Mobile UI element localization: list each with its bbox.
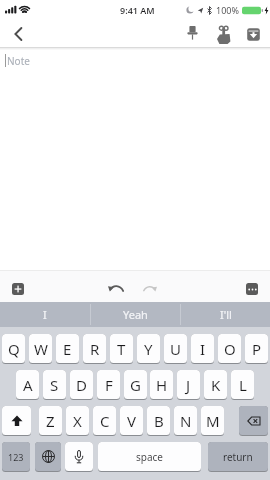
button[interactable]: T [110, 334, 133, 364]
staticText: H [156, 375, 168, 395]
button[interactable] [212, 22, 234, 46]
button[interactable] [65, 442, 93, 472]
button[interactable]: 123 [2, 442, 30, 472]
staticText: V [127, 411, 137, 431]
staticText: N [180, 411, 192, 431]
staticText: P [252, 339, 262, 359]
staticText: F [105, 375, 113, 395]
button[interactable]: K [204, 370, 227, 400]
button[interactable]: L [231, 370, 254, 400]
staticText: S [50, 375, 59, 395]
button[interactable] [246, 283, 258, 295]
staticText: R [90, 339, 100, 359]
staticText: 9:41 AM [120, 4, 155, 16]
staticText: U [170, 339, 181, 359]
button[interactable]: M [201, 406, 224, 436]
staticText: D [76, 375, 87, 395]
button[interactable] [239, 406, 268, 436]
button[interactable]: Q [2, 334, 25, 364]
staticText: return [223, 450, 253, 464]
button[interactable] [242, 22, 264, 46]
staticText: Note [7, 54, 30, 68]
button[interactable] [106, 281, 126, 297]
button[interactable]: I [191, 334, 214, 364]
button[interactable]: P [245, 334, 268, 364]
staticText: M [206, 411, 220, 431]
button[interactable]: V [120, 406, 143, 436]
button[interactable]: U [164, 334, 187, 364]
button[interactable]: R [83, 334, 106, 364]
button[interactable]: J [177, 370, 200, 400]
button[interactable]: I [0, 302, 90, 327]
staticText: C [100, 411, 110, 431]
button[interactable]: N [174, 406, 197, 436]
button[interactable]: H [150, 370, 173, 400]
staticText: A [23, 375, 33, 395]
button[interactable]: F [97, 370, 120, 400]
staticText: K [211, 375, 221, 395]
button[interactable] [139, 281, 159, 297]
button[interactable]: Yeah [91, 302, 180, 327]
button[interactable] [12, 283, 24, 295]
staticText: Z [46, 411, 55, 431]
button[interactable]: A [16, 370, 39, 400]
button[interactable]: Y [137, 334, 160, 364]
staticText: G [130, 375, 141, 395]
staticText: Y [144, 339, 153, 359]
staticText: J [186, 375, 191, 395]
staticText: Q [8, 339, 20, 359]
staticText: 100% [216, 4, 239, 16]
button[interactable]: O [218, 334, 241, 364]
button[interactable]: Z [39, 406, 62, 436]
staticText: space [136, 450, 163, 464]
staticText: E [63, 339, 72, 359]
staticText: I [43, 307, 47, 322]
button[interactable]: space [98, 442, 201, 472]
button[interactable]: X [66, 406, 89, 436]
button[interactable]: I'll [181, 302, 270, 327]
staticText: I'll [220, 307, 232, 322]
staticText: W [34, 339, 48, 359]
button[interactable]: return [208, 442, 268, 472]
button[interactable] [2, 406, 31, 436]
staticText: I [200, 339, 206, 359]
staticText: Yeah [123, 307, 148, 322]
staticText: B [154, 411, 164, 431]
staticText: O [224, 339, 236, 359]
button[interactable] [9, 25, 27, 43]
button[interactable] [181, 22, 203, 46]
staticText: L [239, 375, 247, 395]
button[interactable]: G [124, 370, 147, 400]
staticText: 123 [8, 451, 24, 463]
button[interactable]: E [56, 334, 79, 364]
button[interactable]: D [70, 370, 93, 400]
staticText: T [117, 339, 126, 359]
button[interactable]: W [29, 334, 52, 364]
button[interactable]: C [93, 406, 116, 436]
button[interactable]: B [147, 406, 170, 436]
button[interactable] [35, 442, 61, 472]
button[interactable]: S [43, 370, 66, 400]
staticText: X [73, 411, 82, 431]
